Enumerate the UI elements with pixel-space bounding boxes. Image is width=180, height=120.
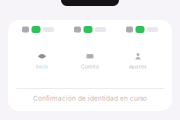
staticText: Cuenta [81,64,99,70]
button[interactable]: Cuenta [66,49,114,73]
staticText: Inicio [36,64,48,70]
button[interactable]: Inicio [18,49,66,73]
button[interactable]: Ajustes [114,49,162,73]
staticText: Ajustes [129,64,147,70]
button[interactable]: Confirmación de identidad en curso [15,94,165,103]
staticText: Confirmación de identidad en curso [33,95,147,102]
